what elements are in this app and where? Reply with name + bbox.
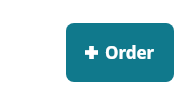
other: Add bbox=[85, 46, 98, 59]
button[interactable]: Add bbox=[66, 23, 174, 82]
staticText: Order bbox=[105, 41, 155, 64]
